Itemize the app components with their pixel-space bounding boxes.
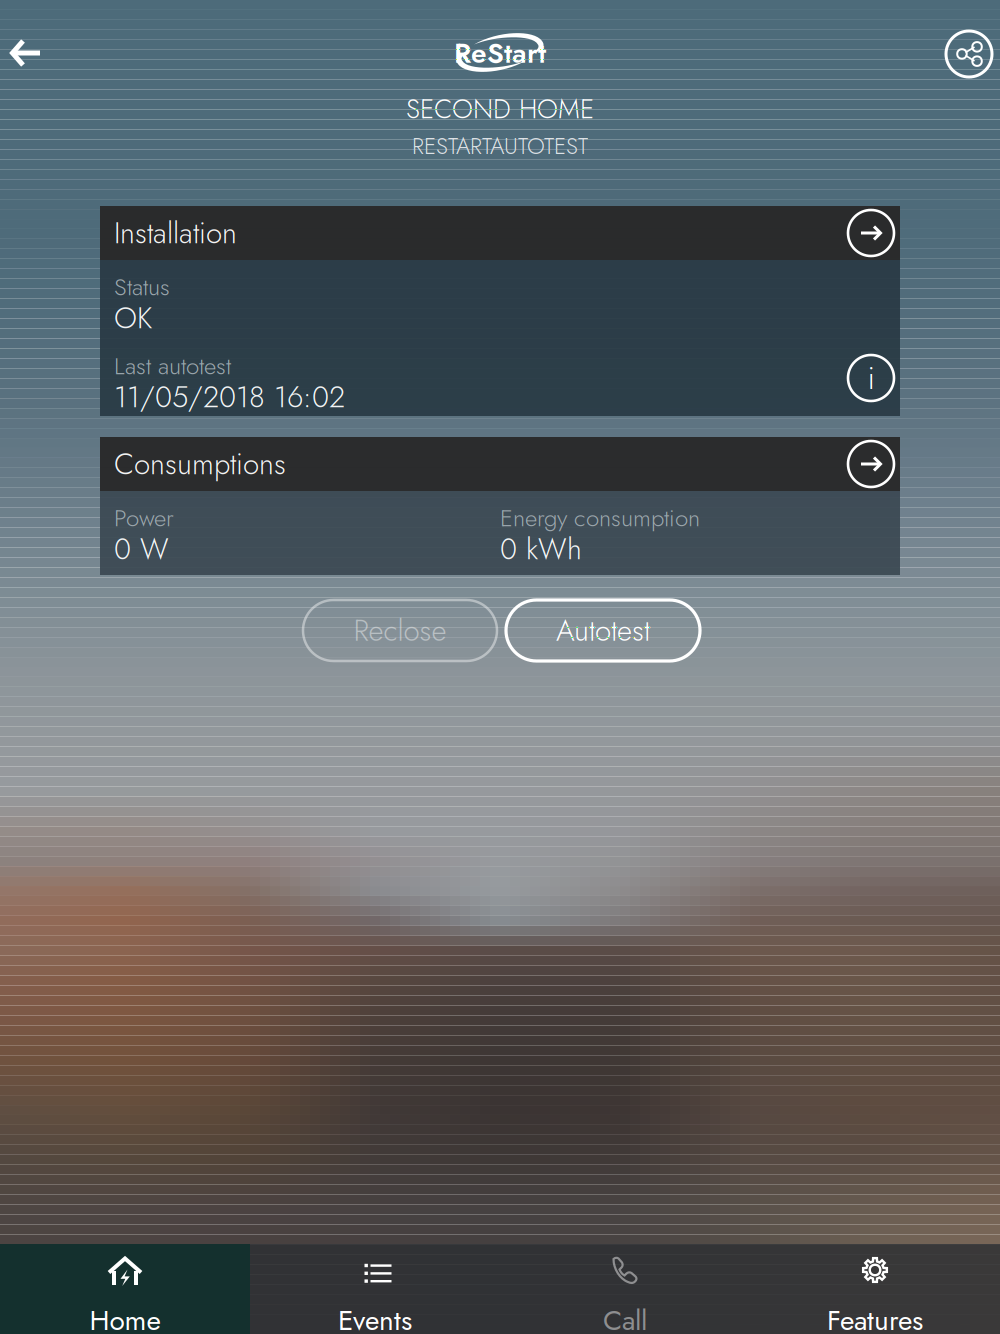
button[interactable]: Call: [500, 1244, 750, 1334]
staticText: Autotest: [556, 609, 650, 652]
staticText: Installation: [114, 212, 237, 254]
button[interactable]: Installation: [100, 206, 900, 416]
staticText: Home: [89, 1300, 160, 1334]
button[interactable]: Reclose: [303, 600, 497, 661]
staticText: Events: [338, 1300, 412, 1334]
staticText: Consumptions: [114, 443, 286, 485]
staticText: 11/05/2018 16:02: [114, 376, 345, 418]
button[interactable]: Autotest: [506, 600, 700, 661]
button[interactable]: Consumptions: [100, 437, 900, 575]
staticText: Call: [603, 1300, 647, 1334]
button[interactable]: Events: [250, 1244, 500, 1334]
button[interactable]: Home: [0, 1244, 250, 1334]
button[interactable]: Back: [0, 23, 58, 83]
staticText: Status: [114, 270, 170, 304]
staticText: ReStart: [454, 33, 546, 73]
staticText: Last autotest: [114, 349, 231, 383]
staticText: 0 kWh: [500, 528, 582, 570]
staticText: Energy consumption: [500, 501, 700, 535]
staticText: SECOND HOME: [406, 90, 594, 128]
button[interactable]: Share: [939, 24, 999, 84]
staticText: i: [867, 355, 874, 401]
staticText: Features: [827, 1300, 923, 1334]
staticText: OK: [114, 297, 152, 339]
button[interactable]: Features: [750, 1244, 1000, 1334]
staticText: Reclose: [353, 609, 446, 652]
staticText: Power: [114, 501, 174, 535]
staticText: 0 W: [114, 528, 169, 570]
staticText: RESTARTAUTOTEST: [412, 130, 588, 162]
